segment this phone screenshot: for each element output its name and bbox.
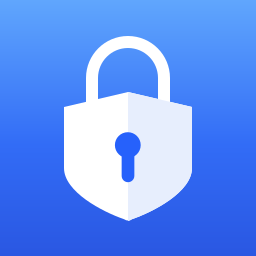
- button[interactable]: Unlock: [0, 0, 256, 256]
